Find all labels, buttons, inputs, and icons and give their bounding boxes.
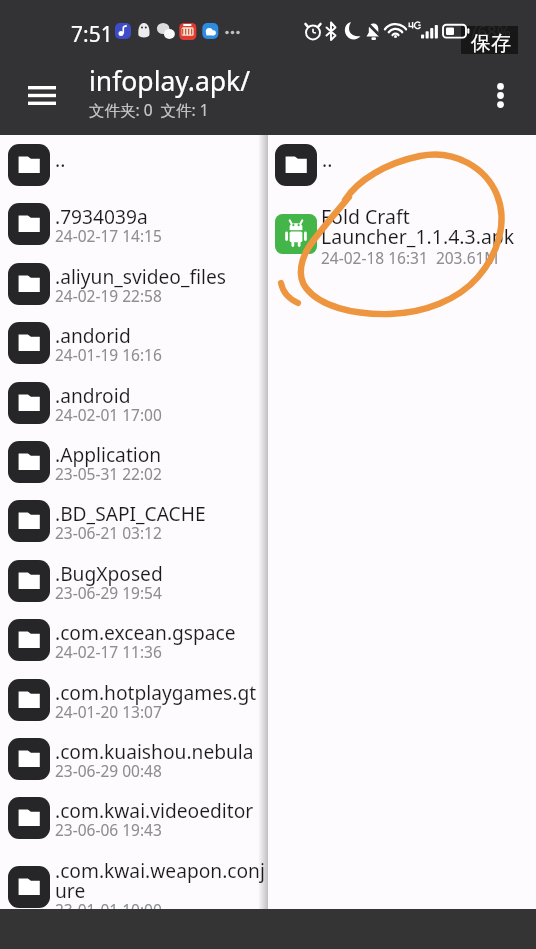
staticText: .7934039a — [55, 203, 148, 229]
button[interactable]: .com.kwai.videoeditor — [0, 788, 268, 847]
button[interactable]: .BD_SAPI_CACHE — [0, 491, 268, 550]
staticText: .. — [322, 146, 333, 172]
button[interactable]: .com.excean.gspace — [0, 610, 268, 669]
staticText: 7:51 — [71, 20, 113, 49]
staticText: .BD_SAPI_CACHE — [55, 500, 206, 526]
button[interactable]: .7934039a — [0, 194, 268, 253]
staticText: .com.kwai.videoeditor — [55, 797, 254, 823]
button[interactable]: .. — [0, 135, 268, 194]
staticText: 24-02-17 11:36 — [55, 641, 162, 662]
staticText: .andorid — [55, 322, 131, 348]
button[interactable]: .android — [0, 373, 268, 432]
staticText: .com.hotplaygames.gt — [55, 679, 257, 705]
staticText: 23-06-29 19:54 — [55, 582, 162, 603]
staticText: /68% — [471, 20, 511, 43]
button[interactable]: .com.kuaishou.nebula — [0, 729, 268, 788]
button[interactable]: Fold Craft Launcher_1.1.4.3.apk — [268, 194, 536, 274]
staticText: 文件夹: 0 文件: 1 — [89, 99, 209, 120]
button[interactable]: .BugXposed — [0, 551, 268, 610]
staticText: 23-06-06 19:43 — [55, 819, 162, 840]
button[interactable]: .Application — [0, 432, 268, 491]
staticText: 23-05-31 22:02 — [55, 463, 162, 484]
staticText: .BugXposed — [55, 560, 163, 586]
staticText: .android — [55, 382, 131, 408]
staticText: .. — [55, 146, 66, 172]
staticText: .aliyun_svideo_files — [55, 263, 226, 289]
button[interactable]: .andorid — [0, 313, 268, 372]
staticText: 24-02-01 17:00 — [55, 404, 162, 425]
staticText: .com.kwai.weapon.conjure — [55, 857, 268, 903]
staticText: 24-02-17 14:15 — [55, 225, 162, 246]
button[interactable]: .. — [268, 135, 536, 194]
staticText: 24-01-19 16:16 — [55, 344, 162, 365]
button[interactable]: .com.hotplaygames.gt — [0, 670, 268, 729]
button[interactable]: Menu — [0, 56, 84, 135]
button[interactable]: .aliyun_svideo_files — [0, 254, 268, 313]
staticText: 保存 — [471, 31, 511, 56]
button[interactable]: More options — [464, 56, 536, 135]
staticText: infoplay.apk/ — [89, 63, 251, 99]
staticText: 24-02-18 16:31 203.61M — [321, 247, 499, 268]
staticText: Fold Craft Launcher_1.1.4.3.apk — [321, 203, 533, 250]
staticText: 24-02-19 22:58 — [55, 285, 162, 306]
staticText: 24-01-20 13:07 — [55, 701, 162, 722]
staticText: 23-06-29 00:48 — [55, 760, 162, 781]
staticText: .com.excean.gspace — [55, 619, 236, 645]
staticText: .com.kuaishou.nebula — [55, 738, 254, 764]
staticText: .Application — [55, 441, 162, 467]
staticText: 23-01-01 10:00 — [55, 899, 162, 920]
staticText: 23-06-21 03:12 — [55, 522, 162, 543]
button[interactable]: .com.kwai.weapon.conjure — [0, 848, 268, 926]
